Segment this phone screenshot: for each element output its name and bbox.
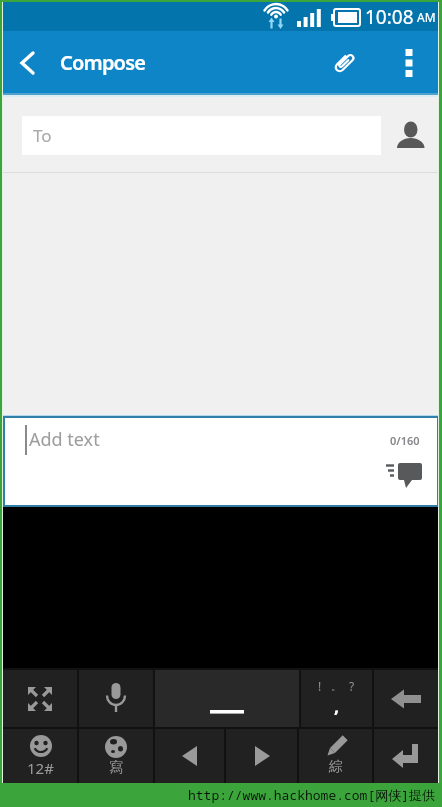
staticText: ?: [349, 678, 355, 694]
button[interactable]: 12#: [3, 729, 77, 783]
button[interactable]: 綜: [299, 729, 372, 783]
button[interactable]: [3, 670, 77, 727]
staticText: AM: [417, 9, 436, 25]
staticText: 。: [331, 680, 341, 693]
staticText: 寫: [109, 759, 123, 777]
button[interactable]: To: [22, 116, 381, 155]
staticText: http://www.hackhome.com[网侠]提供: [188, 786, 436, 804]
button[interactable]: [389, 43, 429, 83]
staticText: !: [318, 678, 322, 694]
staticText: ,: [334, 694, 340, 719]
staticText: 12#: [27, 758, 54, 778]
button[interactable]: [3, 38, 53, 88]
button[interactable]: [389, 113, 433, 157]
staticText: To: [33, 124, 52, 147]
button[interactable]: Add text: [5, 418, 437, 505]
staticText: Add text: [29, 427, 100, 452]
button[interactable]: [226, 729, 297, 783]
button[interactable]: [374, 670, 439, 727]
staticText: 10:08: [365, 4, 414, 30]
button[interactable]: [155, 670, 299, 727]
staticText: 綜: [329, 758, 343, 776]
button[interactable]: [318, 37, 370, 89]
button[interactable]: [374, 729, 439, 783]
button[interactable]: !: [301, 670, 372, 727]
staticText: Compose: [60, 49, 146, 76]
button[interactable]: 寫: [79, 729, 153, 783]
staticText: 0/160: [390, 433, 420, 448]
button[interactable]: [155, 729, 224, 783]
button[interactable]: [381, 458, 425, 492]
button[interactable]: [79, 670, 153, 727]
